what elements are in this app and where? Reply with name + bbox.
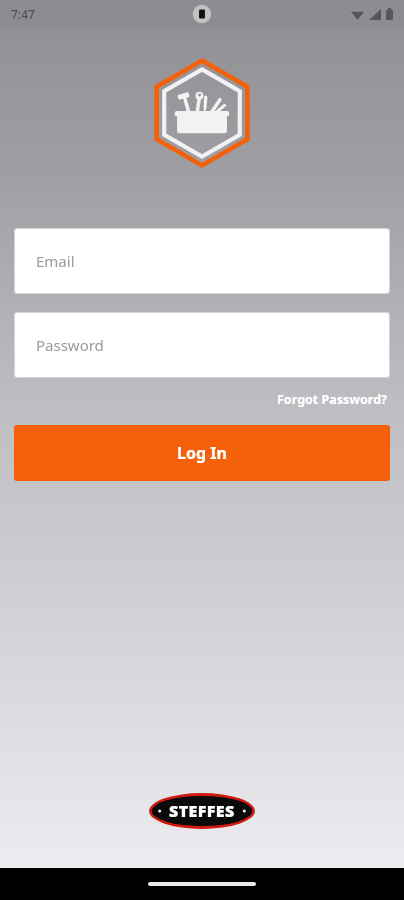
button[interactable]: Forgot Password? [275,387,390,412]
staticText: Password [36,335,104,355]
staticText: STEFFES [169,800,235,822]
staticText: Forgot Password? [277,391,388,408]
button[interactable]: Password [14,312,390,378]
staticText: Log In [177,442,227,464]
staticText: Email [36,251,75,271]
button[interactable]: Log In [14,425,390,481]
other: Steffes [148,788,256,834]
staticText: 7:47 [11,6,35,22]
button[interactable]: Email [14,228,390,294]
